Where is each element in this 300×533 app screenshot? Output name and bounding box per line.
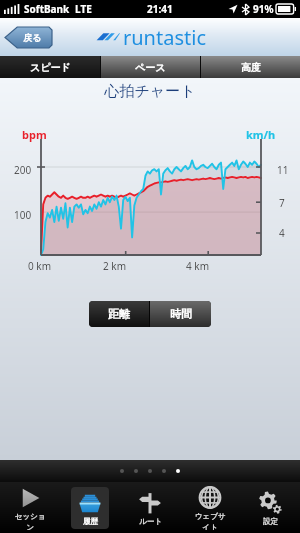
staticText: 4 km xyxy=(186,259,210,273)
staticText: 91% xyxy=(253,2,274,16)
staticText: 4 xyxy=(279,226,285,240)
staticText: ルート xyxy=(139,517,162,526)
staticText: 距離 xyxy=(108,307,130,321)
button[interactable]: スピード xyxy=(0,56,100,78)
staticText: 戻る xyxy=(23,32,42,43)
staticText: セッション xyxy=(14,512,46,530)
staticText: runtastic xyxy=(123,24,206,51)
staticText: 21:41 xyxy=(147,2,173,16)
staticText: SoftBank xyxy=(24,2,70,16)
button[interactable]: ペース xyxy=(101,56,200,78)
staticText: 2 km xyxy=(103,259,127,273)
staticText: bpm xyxy=(22,127,47,142)
staticText: 0 km xyxy=(28,259,52,273)
staticText: 時間 xyxy=(170,307,192,321)
staticText: 履歴 xyxy=(83,517,98,526)
staticText: km/h xyxy=(246,127,276,142)
button[interactable]: ウェブサイト xyxy=(180,482,240,533)
staticText: 7 xyxy=(279,196,285,210)
button[interactable]: 履歴 xyxy=(60,482,120,533)
staticText: 設定 xyxy=(263,517,278,526)
staticText: 100 xyxy=(14,208,32,222)
staticText: 高度 xyxy=(241,61,261,74)
button[interactable]: 戻る xyxy=(5,27,52,48)
staticText: ウェブサイト xyxy=(194,512,226,530)
button[interactable]: 時間 xyxy=(150,301,211,327)
button[interactable]: ルート xyxy=(120,482,180,533)
staticText: ペース xyxy=(135,61,166,74)
staticText: LTE xyxy=(75,2,92,16)
staticText: 心拍チャート xyxy=(0,82,300,101)
button[interactable]: 高度 xyxy=(201,56,300,78)
staticText: 200 xyxy=(14,163,32,177)
button[interactable]: 設定 xyxy=(240,482,300,533)
staticText: 11 xyxy=(277,163,289,177)
button[interactable]: セッション xyxy=(0,482,60,533)
staticText: スピード xyxy=(30,61,71,74)
button[interactable]: 距離 xyxy=(89,301,149,327)
